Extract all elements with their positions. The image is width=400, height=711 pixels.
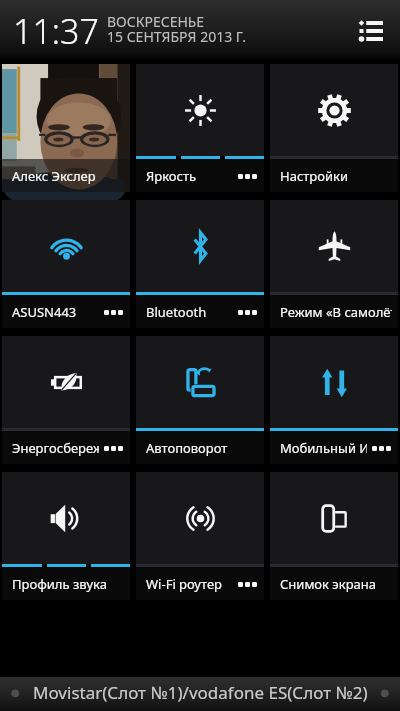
staticText: Профиль звука <box>12 575 107 593</box>
button[interactable]: Wi-Fi роутер <box>136 472 264 600</box>
staticText: ASUSN443 <box>12 303 77 321</box>
button[interactable]: Яркость <box>136 64 264 192</box>
button[interactable]: ASUSN443 <box>2 200 130 328</box>
staticText: Режим «В самолёте» <box>280 303 392 321</box>
button[interactable]: More options <box>236 162 258 190</box>
button[interactable]: Мобильный Интернет <box>270 336 398 464</box>
staticText: Настройки <box>280 167 349 185</box>
button[interactable]: Bluetooth <box>136 200 264 328</box>
button[interactable]: More options <box>236 298 258 326</box>
button[interactable]: More options <box>102 298 124 326</box>
staticText: Энергосбережение <box>12 439 99 457</box>
staticText: Movistar(Слот №1)/vodafone ES(Слот №2) <box>33 681 368 704</box>
staticText: Алекс Экслер <box>12 167 96 185</box>
staticText: Яркость <box>146 167 197 185</box>
button[interactable]: Профиль звука <box>2 472 130 600</box>
button[interactable]: Алекс Экслер <box>2 64 130 192</box>
button[interactable]: Снимок экрана <box>270 472 398 600</box>
staticText: 11:37 <box>13 8 99 54</box>
button[interactable]: More options <box>102 434 124 462</box>
button[interactable]: Автоповорот <box>136 336 264 464</box>
button[interactable]: More options <box>370 434 392 462</box>
staticText: Автоповорот <box>146 439 228 457</box>
button[interactable]: Режим «В самолёте» <box>270 200 398 328</box>
staticText: Bluetooth <box>146 303 207 321</box>
button[interactable]: More options <box>236 570 258 598</box>
staticText: Снимок экрана <box>280 575 377 593</box>
staticText: Wi-Fi роутер <box>146 575 222 593</box>
staticText: ВОСКРЕСЕНЬЕ <box>107 12 205 31</box>
staticText: Мобильный Интернет <box>280 439 367 457</box>
staticText: 15 СЕНТЯБРЯ 2013 Г. <box>107 27 247 46</box>
button[interactable]: Настройки <box>270 64 398 192</box>
button[interactable]: Notifications <box>344 5 396 57</box>
button[interactable]: Энергосбережение <box>2 336 130 464</box>
